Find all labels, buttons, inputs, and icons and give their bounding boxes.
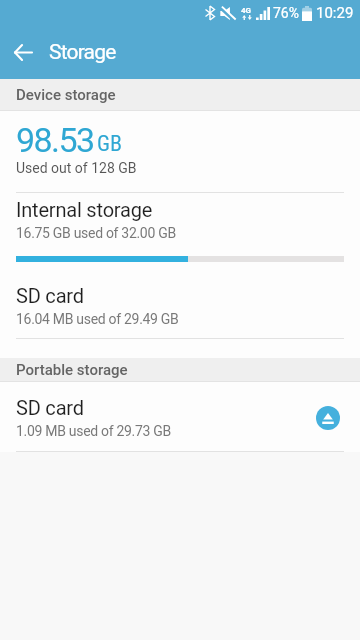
staticText: SD card — [16, 284, 84, 307]
staticText: 76% — [273, 5, 299, 21]
staticText: GB — [97, 131, 123, 157]
button[interactable]: SD card — [0, 382, 360, 451]
staticText: Used out of 128 GB — [16, 160, 137, 176]
staticText: 98.53 — [16, 120, 94, 160]
staticText: 1.09 MB used of 29.73 GB — [16, 423, 171, 439]
button[interactable] — [9, 38, 37, 66]
staticText: Device storage — [16, 86, 116, 104]
staticText: SD card — [16, 396, 84, 419]
staticText: 16.75 GB used of 32.00 GB — [16, 225, 176, 241]
staticText: 4G — [241, 6, 252, 15]
staticText: Portable storage — [16, 361, 128, 379]
button[interactable] — [316, 406, 340, 430]
staticText: 16.04 MB used of 29.49 GB — [16, 311, 179, 327]
button[interactable]: 98.53 — [0, 111, 360, 192]
staticText: 10:29 — [316, 4, 354, 22]
staticText: Internal storage — [16, 198, 153, 221]
staticText: Storage — [49, 40, 116, 65]
button[interactable]: Internal storage — [0, 193, 360, 262]
button[interactable]: SD card — [0, 262, 360, 338]
